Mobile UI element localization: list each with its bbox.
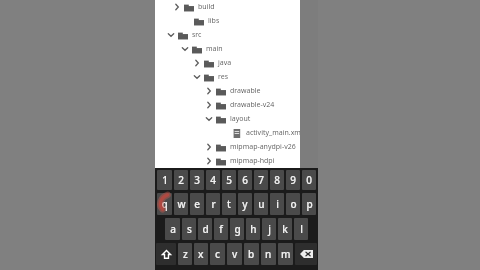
staticText: 7 (258, 173, 264, 187)
staticText: f (219, 222, 223, 236)
button[interactable]: n (261, 243, 276, 265)
staticText: g (234, 222, 241, 236)
staticText: 5 (226, 173, 232, 187)
button[interactable]: p (302, 193, 316, 215)
staticText: y (242, 197, 248, 211)
staticText: b (248, 247, 255, 261)
staticText: s (187, 222, 192, 236)
button[interactable]: mipmap-hdpi (155, 154, 318, 168)
button[interactable]: 3 (190, 170, 204, 190)
staticText: res (218, 72, 229, 82)
staticText: 6 (242, 173, 248, 187)
staticText: q (161, 197, 168, 211)
button[interactable]: 1 (157, 170, 172, 190)
staticText: r (211, 197, 216, 211)
staticText: 3 (194, 173, 200, 187)
button[interactable]: x (194, 243, 208, 265)
button[interactable]: 6 (238, 170, 252, 190)
button[interactable]: 9 (286, 170, 300, 190)
button[interactable]: w (174, 193, 188, 215)
button[interactable]: q (157, 193, 172, 215)
staticText: o (290, 197, 297, 211)
button[interactable]: 5 (222, 170, 236, 190)
button[interactable]: drawable-v24 (155, 98, 318, 112)
button[interactable]: 2 (174, 170, 188, 190)
button[interactable]: e (190, 193, 204, 215)
button[interactable]: Shift (156, 243, 176, 265)
staticText: drawable (230, 86, 261, 96)
staticText: 2 (178, 173, 184, 187)
button[interactable]: java (155, 56, 318, 70)
staticText: v (232, 247, 238, 261)
button[interactable]: v (227, 243, 242, 265)
staticText: w (177, 197, 186, 211)
button[interactable]: k (278, 218, 292, 240)
button[interactable]: l (294, 218, 308, 240)
button[interactable]: c (210, 243, 225, 265)
staticText: drawable-v24 (230, 100, 275, 110)
staticText: j (268, 222, 271, 236)
button[interactable]: res (155, 70, 318, 84)
staticText: d (202, 222, 209, 236)
button[interactable]: d (198, 218, 212, 240)
button[interactable]: i (270, 193, 284, 215)
staticText: mipmap-hdpi (230, 156, 275, 166)
button[interactable]: 0 (302, 170, 316, 190)
staticText: m (281, 247, 291, 261)
staticText: n (265, 247, 272, 261)
button[interactable]: s (182, 218, 196, 240)
button[interactable]: b (244, 243, 259, 265)
staticText: build (198, 2, 215, 12)
staticText: src (192, 30, 202, 40)
staticText: t (227, 197, 231, 211)
staticText: l (300, 222, 303, 236)
button[interactable]: y (238, 193, 252, 215)
staticText: java (218, 58, 232, 68)
staticText: libs (208, 16, 220, 26)
button[interactable]: f (214, 218, 228, 240)
staticText: 8 (274, 173, 280, 187)
staticText: h (250, 222, 257, 236)
staticText: c (215, 247, 220, 261)
button[interactable]: layout (155, 112, 318, 126)
button[interactable]: 4 (206, 170, 220, 190)
staticText: k (282, 222, 288, 236)
button[interactable]: r (206, 193, 220, 215)
staticText: p (306, 197, 313, 211)
staticText: i (276, 197, 279, 211)
staticText: activity_main.xml (246, 128, 303, 138)
button[interactable]: o (286, 193, 300, 215)
button[interactable]: z (178, 243, 192, 265)
button[interactable]: a (165, 218, 180, 240)
button[interactable]: libs (155, 14, 318, 28)
staticText: layout (230, 114, 251, 124)
button[interactable]: j (262, 218, 276, 240)
button[interactable]: activity_main.xml (155, 126, 318, 140)
button[interactable]: main (155, 42, 318, 56)
staticText: u (258, 197, 265, 211)
staticText: a (170, 222, 176, 236)
button[interactable]: g (230, 218, 244, 240)
staticText: 9 (290, 173, 296, 187)
button[interactable]: 7 (254, 170, 268, 190)
button[interactable]: t (222, 193, 236, 215)
button[interactable]: mipmap-anydpi-v26 (155, 140, 318, 154)
staticText: mipmap-anydpi-v26 (230, 142, 296, 152)
staticText: 0 (306, 173, 312, 187)
button[interactable]: src (155, 28, 318, 42)
button[interactable]: build (155, 0, 318, 14)
button[interactable]: h (246, 218, 260, 240)
staticText: 4 (210, 173, 216, 187)
button[interactable]: 8 (270, 170, 284, 190)
button[interactable]: drawable (155, 84, 318, 98)
button[interactable]: u (254, 193, 268, 215)
staticText: z (183, 247, 188, 261)
staticText: x (198, 247, 204, 261)
staticText: e (194, 197, 200, 211)
button[interactable]: m (278, 243, 293, 265)
staticText: main (206, 44, 223, 54)
button[interactable]: Backspace (295, 243, 317, 265)
staticText: 1 (162, 173, 168, 187)
